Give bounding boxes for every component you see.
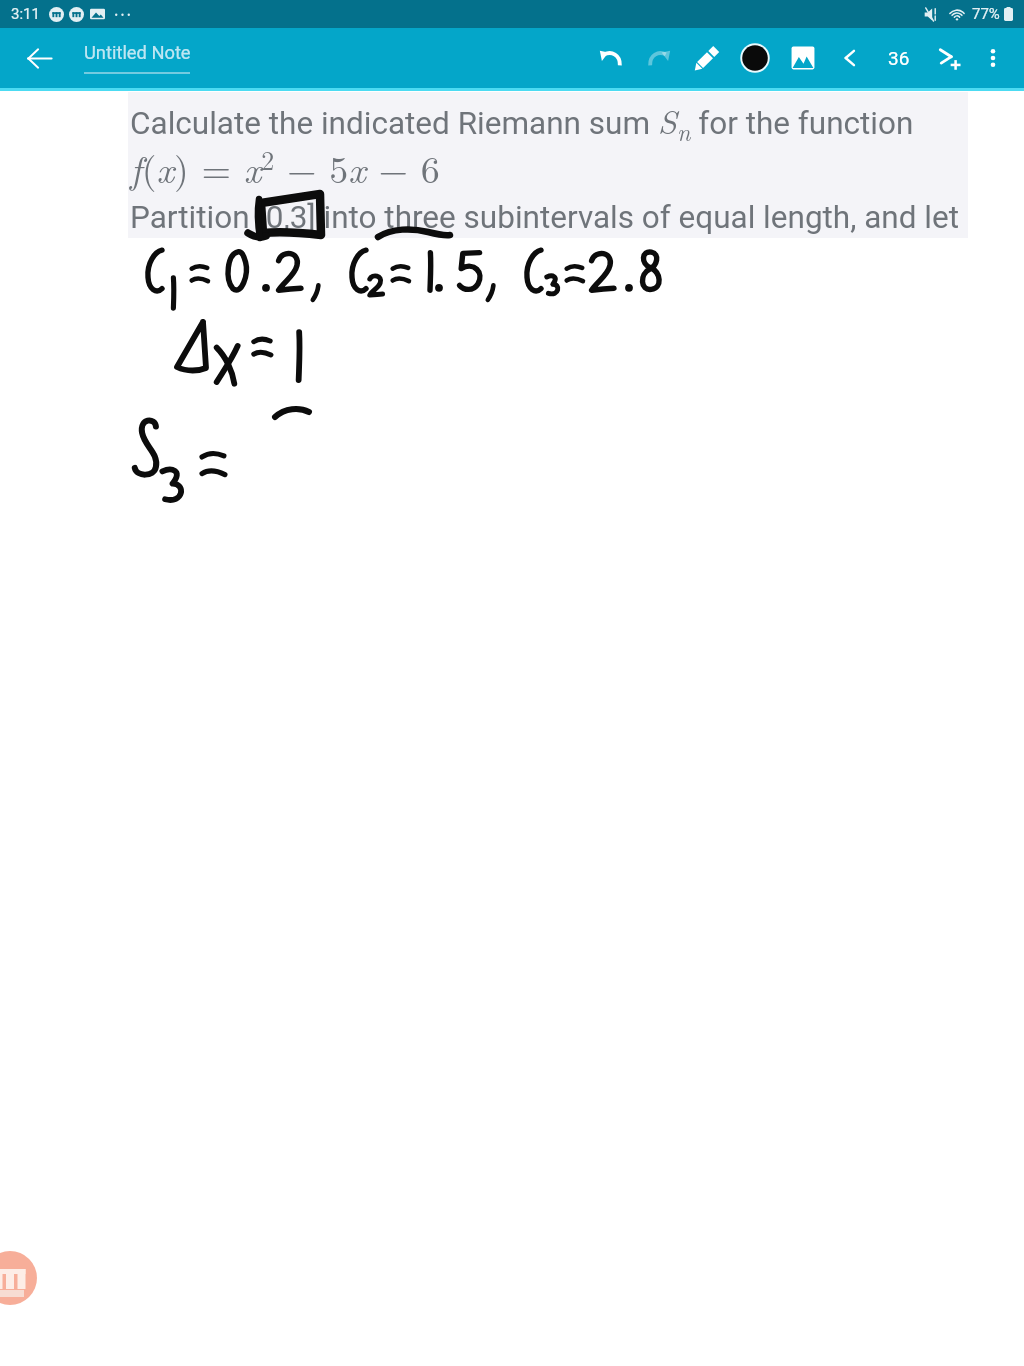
staticText: Calculate the indicated Riemann sum Sn f… xyxy=(130,96,914,148)
button[interactable]: Redo xyxy=(635,34,683,82)
button[interactable]: Pen tool xyxy=(683,34,731,82)
button[interactable]: Undo xyxy=(587,34,635,82)
button[interactable]: More options xyxy=(973,34,1013,82)
staticText: 77% xyxy=(972,5,1000,23)
staticText: Partition [0,3] into three subintervals … xyxy=(130,199,960,236)
button[interactable]: Add page xyxy=(925,34,973,82)
staticText: f(x) = x2 − 5x − 6 xyxy=(130,140,440,194)
button[interactable]: 36 xyxy=(873,36,925,80)
button[interactable]: Untitled Note xyxy=(84,40,191,76)
button[interactable]: Previous page xyxy=(827,34,873,82)
staticText: 36 xyxy=(888,47,910,69)
staticText: Untitled Note xyxy=(84,42,191,63)
button[interactable]: Back xyxy=(20,39,58,77)
button[interactable]: Pen colour xyxy=(731,34,779,82)
staticText: 3:11 xyxy=(11,5,40,23)
button[interactable]: Insert image xyxy=(779,34,827,82)
